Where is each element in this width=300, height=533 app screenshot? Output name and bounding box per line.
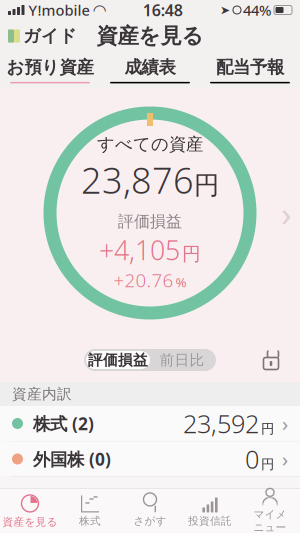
staticText: +4,105 (99, 232, 180, 268)
staticText: 投資信託 (188, 514, 232, 527)
staticText: 資産を見る (96, 23, 203, 49)
button[interactable]: 外国株 (0) (0, 441, 300, 476)
button[interactable]: 配当予報 (200, 52, 300, 88)
staticText: 外国株 (0) (33, 447, 111, 470)
staticText: お預り資産 (6, 57, 93, 78)
staticText: 円 (182, 243, 201, 265)
staticText: Y!mobile (28, 0, 89, 20)
staticText: 評価損益 (88, 351, 148, 369)
button[interactable]: ロック解除 (256, 346, 286, 374)
button[interactable]: 株式 (60, 489, 120, 533)
staticText: 円 (194, 170, 219, 201)
button[interactable]: マイメニュー (240, 489, 300, 533)
staticText: 23,592 (183, 407, 259, 440)
staticText: ➤ (220, 3, 230, 17)
staticText: 44% (243, 0, 271, 20)
button[interactable]: 株式 (2) (0, 406, 300, 441)
staticText: 0 (245, 442, 259, 476)
staticText: ◠ (93, 1, 105, 19)
staticText: ガイド (23, 25, 77, 47)
button[interactable]: お預り資産 (0, 52, 100, 88)
staticText: 成績表 (124, 57, 175, 78)
staticText: 16:48 (143, 0, 183, 21)
staticText: 円 (261, 421, 274, 437)
staticText: 資産内訳 (12, 385, 72, 403)
staticText: +20.76 (113, 268, 173, 292)
staticText: 配当予報 (216, 57, 284, 78)
staticText: 資産を見る (2, 515, 57, 528)
staticText: % (175, 273, 186, 291)
staticText: › (281, 190, 292, 236)
staticText: 円 (261, 456, 274, 473)
button[interactable]: 投資信託 (180, 489, 240, 533)
staticText: 株式 (79, 514, 101, 527)
staticText: すべての資産 (97, 133, 203, 155)
staticText: 23,876 (81, 156, 194, 204)
button[interactable]: 評価損益 (84, 349, 216, 371)
button[interactable]: さがす (120, 489, 180, 533)
staticText: › (282, 446, 288, 472)
staticText: › (282, 410, 288, 437)
staticText: 前日比 (159, 351, 204, 369)
staticText: マイメニュー (253, 508, 286, 533)
button[interactable]: 成績表 (100, 52, 200, 88)
staticText: さがす (133, 514, 166, 527)
button[interactable]: 資産を見る (0, 489, 60, 533)
staticText: 評価損益 (118, 212, 182, 231)
button[interactable]: ガイド (0, 19, 85, 53)
staticText: 株式 (2) (33, 412, 94, 435)
